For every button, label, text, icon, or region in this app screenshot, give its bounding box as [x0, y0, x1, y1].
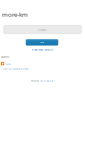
button[interactable]: View web version — [31, 48, 53, 51]
staticText: Home — [40, 41, 44, 43]
staticText: sumiki — [5, 63, 10, 65]
staticText: Blogger — [43, 79, 53, 82]
staticText: View my complete profile — [2, 67, 28, 70]
staticText: About me — [1, 56, 9, 58]
button[interactable]: View my complete profile — [2, 67, 28, 70]
button[interactable]: Blogger — [43, 79, 53, 82]
button[interactable]: Home — [26, 39, 58, 45]
button[interactable]: sumiki — [5, 62, 10, 65]
staticText: Powered by — [30, 79, 43, 82]
staticText: View web version — [31, 48, 53, 51]
staticText: No posts. — [37, 28, 47, 31]
staticText: more-km — [2, 10, 28, 18]
